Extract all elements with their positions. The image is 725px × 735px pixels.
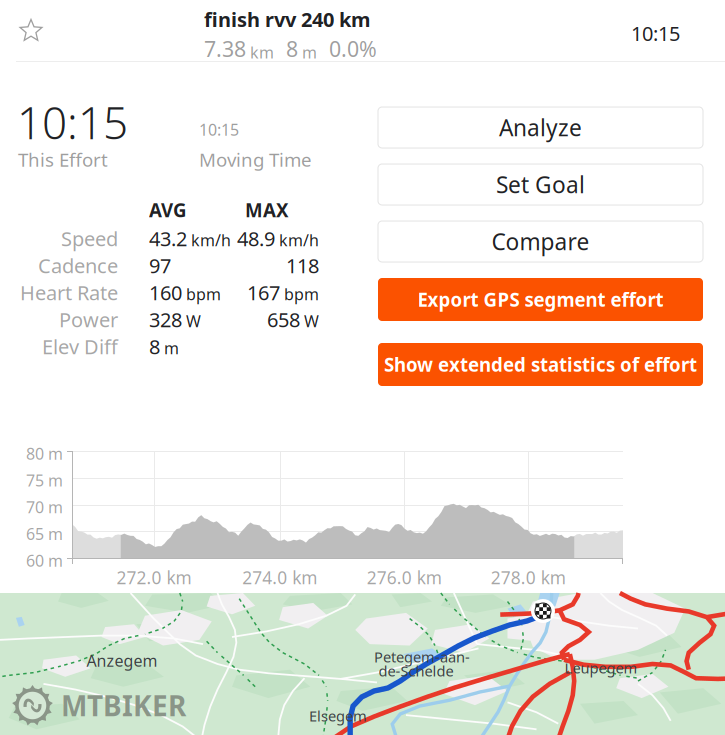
staticText: 48.9 bbox=[237, 225, 275, 252]
staticText: 70 m bbox=[26, 496, 63, 518]
staticText: 7.38 bbox=[204, 35, 246, 63]
staticText: 160 bbox=[149, 279, 182, 306]
staticText: bpm bbox=[280, 283, 319, 305]
button[interactable]: Show extended statistics of effort bbox=[378, 343, 703, 386]
staticText: Export GPS segment effort bbox=[417, 287, 663, 312]
staticText: finish rvv 240 km bbox=[204, 6, 371, 33]
staticText: 97 bbox=[149, 252, 171, 279]
staticText: 167 bbox=[247, 279, 280, 306]
button[interactable]: Compare bbox=[378, 221, 703, 262]
staticText: bpm bbox=[182, 283, 221, 305]
staticText: Petegem-aan- bbox=[374, 647, 470, 666]
staticText: Anzegem bbox=[86, 650, 157, 671]
staticText: 328 bbox=[149, 306, 182, 333]
staticText: 272.0 km bbox=[117, 566, 192, 589]
staticText: Show extended statistics of effort bbox=[384, 352, 697, 377]
button[interactable]: Analyze bbox=[378, 107, 703, 148]
button[interactable]: Star segment bbox=[9, 9, 53, 53]
staticText: 658 bbox=[267, 306, 300, 333]
staticText: 60 m bbox=[26, 550, 63, 571]
staticText: 43.2 bbox=[149, 225, 187, 252]
staticText: 65 m bbox=[26, 523, 63, 544]
button[interactable]: Set Goal bbox=[378, 164, 703, 205]
staticText: Cadence bbox=[38, 252, 118, 279]
staticText: 10:15 bbox=[199, 119, 239, 140]
staticText: AVG bbox=[149, 198, 187, 222]
staticText: 274.0 km bbox=[242, 566, 317, 589]
staticText: m bbox=[160, 337, 179, 359]
staticText: Power bbox=[59, 306, 118, 333]
staticText: MTBIKER bbox=[61, 687, 186, 724]
staticText: Moving Time bbox=[199, 147, 312, 172]
staticText: This Effort bbox=[18, 147, 108, 172]
staticText: km bbox=[246, 42, 274, 63]
staticText: 75 m bbox=[26, 470, 63, 491]
staticText: km/h bbox=[275, 229, 319, 251]
staticText: km/h bbox=[187, 229, 231, 251]
staticText: Leupegem bbox=[564, 658, 637, 677]
staticText: W bbox=[182, 310, 201, 332]
staticText: 276.0 km bbox=[367, 566, 442, 589]
staticText: 8 bbox=[274, 35, 298, 63]
staticText: Heart Rate bbox=[20, 279, 118, 306]
staticText: 0.0% bbox=[317, 35, 377, 63]
staticText: Elsegem bbox=[309, 706, 367, 725]
staticText: Analyze bbox=[499, 112, 582, 142]
staticText: W bbox=[300, 310, 319, 332]
staticText: Set Goal bbox=[496, 169, 585, 199]
staticText: 10:15 bbox=[17, 93, 128, 151]
staticText: Elev Diff bbox=[42, 333, 118, 360]
staticText: 118 bbox=[286, 252, 319, 279]
staticText: Speed bbox=[61, 225, 118, 252]
staticText: 80 m bbox=[26, 443, 63, 464]
staticText: 10:15 bbox=[631, 20, 680, 47]
staticText: m bbox=[298, 42, 317, 63]
staticText: MAX bbox=[245, 198, 289, 222]
staticText: de-Schelde bbox=[378, 661, 453, 680]
staticText: Compare bbox=[491, 226, 589, 256]
staticText: 8 bbox=[149, 333, 160, 360]
button[interactable]: Export GPS segment effort bbox=[378, 278, 703, 321]
staticText: 278.0 km bbox=[491, 566, 566, 589]
